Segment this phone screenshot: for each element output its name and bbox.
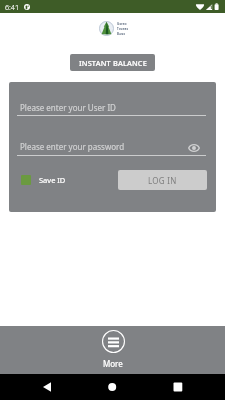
button[interactable]: Home [93,374,133,400]
button[interactable]: More [78,326,148,374]
button[interactable]: Save ID [21,175,66,185]
button[interactable]: LOG IN [118,170,207,190]
staticText: Please enter your User ID [20,102,116,113]
button[interactable]: Show password [185,139,203,157]
button[interactable]: Recent apps [158,374,198,400]
button[interactable]: INSTANT BALANCE [70,54,155,71]
staticText: Gʀᴇᴇɴ [117,22,127,26]
staticText: LOG IN [148,175,177,186]
staticText: Save ID [39,175,66,185]
staticText: Bᴀɴᴋ [117,32,126,36]
button[interactable]: Back [27,374,67,400]
staticText: Please enter your password [20,141,125,152]
staticText: Tɪᴍʙᴇʀ [117,27,129,31]
staticText: INSTANT BALANCE [79,58,147,68]
staticText: 6:41 [5,2,20,12]
staticText: More [103,358,123,369]
